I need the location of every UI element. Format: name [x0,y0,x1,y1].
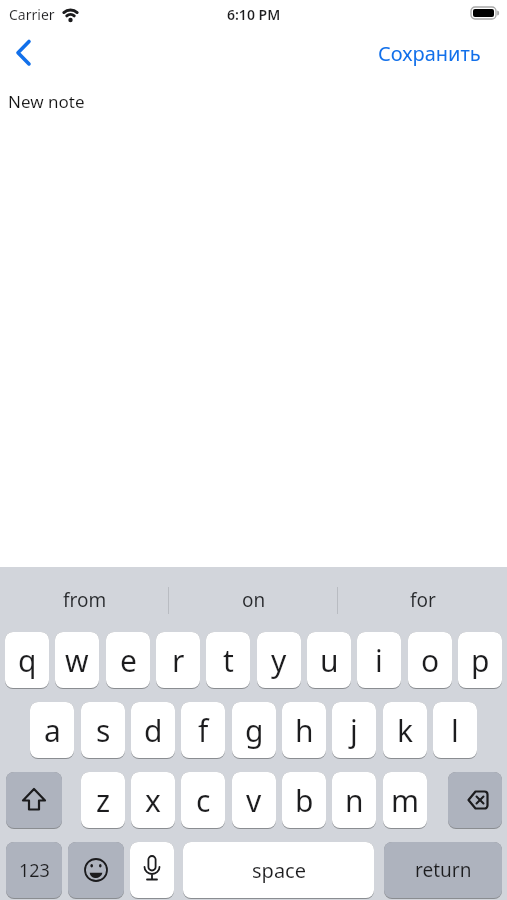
button[interactable]: for [338,575,507,625]
staticText: on [242,587,266,613]
button[interactable]: c [181,772,225,828]
button[interactable]: s [81,702,125,758]
staticText: return [415,857,472,883]
button[interactable]: x [131,772,175,828]
button[interactable]: l [433,702,477,758]
staticText: 123 [19,858,50,883]
staticText: s [96,710,111,751]
button[interactable]: r [156,632,200,688]
staticText: m [391,780,420,821]
staticText: q [18,640,37,681]
button[interactable]: space [183,842,374,898]
button[interactable]: q [5,632,49,688]
button[interactable]: i [357,632,401,688]
staticText: h [295,710,314,751]
staticText: l [451,710,459,751]
staticText: 6:10 PM [227,5,281,24]
button[interactable]: return [384,842,502,898]
staticText: r [172,640,185,681]
staticText: New note [8,90,85,113]
button[interactable]: y [257,632,301,688]
staticText: n [345,780,364,821]
staticText: i [375,640,383,681]
button[interactable]: from [0,575,169,625]
button[interactable]: e [106,632,150,688]
staticText: Сохранить [378,40,481,67]
button[interactable]: v [232,772,276,828]
staticText: c [196,780,211,821]
staticText: x [145,780,161,821]
button[interactable] [448,772,502,828]
staticText: t [223,640,234,681]
staticText: j [350,710,358,751]
button[interactable]: b [282,772,326,828]
button[interactable]: 123 [6,842,62,898]
button[interactable]: k [383,702,427,758]
button[interactable] [130,842,174,898]
button[interactable]: d [131,702,175,758]
staticText: p [471,640,490,681]
staticText: v [246,780,262,821]
staticText: u [320,640,339,681]
button[interactable]: m [383,772,427,828]
staticText: k [397,710,414,751]
button[interactable]: t [206,632,250,688]
button[interactable] [8,36,42,70]
button[interactable]: Сохранить [360,38,490,68]
button[interactable]: z [81,772,125,828]
staticText: d [144,710,163,751]
staticText: e [120,640,137,681]
staticText: a [44,710,61,751]
button[interactable]: j [332,702,376,758]
staticText: b [295,780,314,821]
button[interactable]: w [55,632,99,688]
button[interactable]: g [232,702,276,758]
staticText: o [421,640,440,681]
button[interactable]: a [30,702,74,758]
staticText: w [65,640,89,681]
button[interactable]: p [458,632,502,688]
button[interactable]: on [169,575,338,625]
button[interactable] [68,842,124,898]
button[interactable]: f [181,702,225,758]
staticText: from [63,587,107,613]
button[interactable]: u [307,632,351,688]
button[interactable]: o [408,632,452,688]
button[interactable]: h [282,702,326,758]
button[interactable]: n [332,772,376,828]
staticText: f [198,710,209,751]
staticText: y [271,640,287,681]
staticText: space [252,857,306,884]
staticText: g [245,710,264,751]
staticText: z [96,780,111,821]
button[interactable] [6,772,62,828]
staticText: Carrier [9,5,55,24]
staticText: for [410,587,436,613]
